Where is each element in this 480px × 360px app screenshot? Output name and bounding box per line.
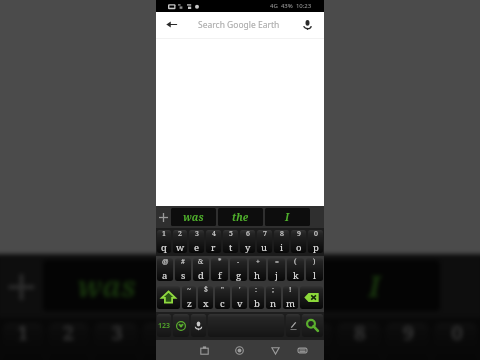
staticText: 9 — [297, 230, 301, 239]
staticText: 4G 43% 10:23 — [270, 2, 312, 10]
button[interactable]: ( — [287, 258, 304, 281]
staticText: b — [254, 297, 260, 309]
button[interactable]: 7 — [289, 323, 331, 360]
button[interactable]: * — [211, 258, 228, 281]
staticText: - — [237, 258, 240, 267]
button[interactable]: & — [193, 258, 209, 281]
button[interactable]: 4 — [206, 230, 221, 253]
staticText: z — [187, 297, 192, 309]
button[interactable]: Symbols — [286, 314, 300, 337]
button[interactable]: - — [230, 258, 247, 281]
staticText: s — [181, 269, 186, 281]
button[interactable]: # — [175, 258, 191, 281]
button[interactable]: Recents — [191, 340, 217, 360]
button[interactable]: 2 — [173, 230, 187, 253]
button[interactable]: 9 — [291, 230, 306, 253]
button[interactable]: 9 — [386, 323, 429, 360]
button[interactable]: 8 — [337, 323, 380, 360]
button[interactable]: 2 — [49, 323, 89, 360]
button[interactable]: 5 — [223, 230, 238, 253]
button[interactable]: 7 — [257, 230, 272, 253]
button[interactable]: Home — [226, 340, 252, 360]
button[interactable]: 3 — [94, 323, 137, 360]
staticText: = — [275, 258, 279, 267]
button[interactable]: Space — [208, 314, 284, 337]
staticText: 6 — [257, 323, 268, 349]
button[interactable]: Shift — [157, 286, 180, 309]
staticText: 0 — [314, 230, 318, 239]
button[interactable]: 6 — [240, 230, 255, 253]
staticText: k — [293, 269, 299, 281]
button[interactable]: I — [311, 260, 440, 311]
staticText: q — [161, 241, 167, 253]
staticText: f — [218, 269, 222, 281]
button[interactable]: Add to dictionary — [0, 254, 43, 317]
button[interactable]: Emoji — [173, 314, 189, 337]
button[interactable]: the — [177, 260, 306, 311]
button[interactable]: ~ — [182, 286, 196, 309]
staticText: 4 — [212, 230, 216, 239]
staticText: d — [198, 269, 204, 281]
staticText: the — [217, 266, 266, 306]
staticText: 123 — [158, 321, 171, 331]
button[interactable]: 0 — [434, 323, 477, 360]
button[interactable]: More suggestions — [440, 254, 480, 317]
button[interactable]: Voice input — [191, 314, 206, 337]
staticText: g — [236, 269, 242, 281]
staticText: 0 — [451, 323, 463, 349]
staticText: * — [218, 258, 222, 267]
button[interactable]: the — [218, 208, 263, 226]
button[interactable]: Back — [164, 17, 179, 32]
button[interactable]: 0 — [308, 230, 323, 253]
button[interactable]: I — [265, 208, 310, 226]
button[interactable]: + — [249, 258, 266, 281]
staticText: ~ — [187, 286, 191, 295]
button[interactable]: Hide keyboard — [289, 340, 315, 360]
button[interactable]: 8 — [274, 230, 289, 253]
button[interactable]: 4 — [143, 323, 186, 360]
staticText: $ — [204, 286, 208, 295]
staticText: was — [77, 266, 137, 306]
staticText: v — [237, 297, 243, 309]
button[interactable]: ! — [283, 286, 298, 309]
button[interactable]: = — [268, 258, 285, 281]
staticText: 5 — [229, 230, 233, 239]
button[interactable]: ; — [266, 286, 281, 309]
button[interactable]: Back — [262, 340, 288, 360]
staticText: @ — [162, 258, 169, 267]
button[interactable]: 1 — [3, 323, 43, 360]
staticText: m — [286, 297, 295, 309]
button[interactable]: was — [43, 260, 171, 311]
staticText: 1 — [17, 323, 29, 349]
button[interactable]: Add to dictionary — [156, 206, 171, 228]
staticText: 2 — [178, 230, 182, 239]
staticText: 9 — [403, 323, 414, 349]
button[interactable]: : — [249, 286, 264, 309]
button[interactable]: 3 — [189, 230, 204, 253]
button[interactable]: Search — [302, 314, 323, 337]
button[interactable]: Voice search — [300, 17, 315, 32]
button[interactable]: @ — [157, 258, 173, 281]
staticText: " — [221, 286, 224, 295]
button[interactable]: " — [215, 286, 230, 309]
staticText: 6 — [246, 230, 250, 239]
staticText: x — [203, 297, 209, 309]
staticText: e — [194, 241, 200, 253]
button[interactable]: $ — [198, 286, 213, 309]
button[interactable]: 6 — [240, 323, 283, 360]
staticText: was — [183, 210, 204, 224]
staticText: r — [211, 241, 216, 253]
button[interactable]: was — [171, 208, 216, 226]
button[interactable]: Backspace — [300, 286, 323, 309]
button[interactable]: 123 — [157, 314, 171, 337]
button[interactable]: 1 — [157, 230, 171, 253]
button[interactable]: ) — [306, 258, 323, 281]
button[interactable]: ' — [232, 286, 247, 309]
button[interactable]: 5 — [191, 323, 234, 360]
